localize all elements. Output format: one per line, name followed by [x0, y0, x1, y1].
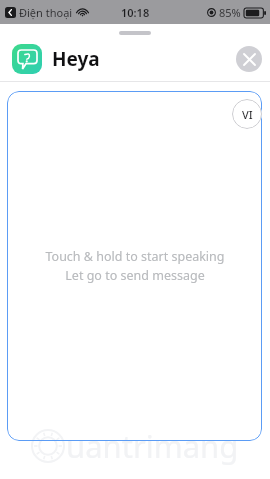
staticText: 85%: [219, 5, 241, 20]
button[interactable]: Heya app icon: [12, 44, 42, 74]
staticText: 10:18: [121, 5, 150, 20]
staticText: uantrimang: [66, 425, 239, 467]
button[interactable]: Close: [236, 46, 262, 72]
staticText: Heya: [52, 46, 100, 72]
staticText: Touch & hold to start speaking: [45, 248, 225, 265]
staticText: VI: [242, 107, 253, 122]
staticText: Let go to send message: [65, 267, 205, 284]
button[interactable]: Touch and hold to speak: [7, 91, 262, 441]
staticText: Điện thoại: [19, 5, 73, 20]
button[interactable]: VI: [232, 99, 262, 129]
